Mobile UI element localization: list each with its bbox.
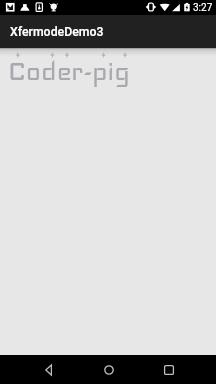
staticText: 3:27 xyxy=(193,2,213,14)
button[interactable]: Recents xyxy=(155,355,183,384)
staticText: Coder-pig xyxy=(8,54,131,88)
staticText: XfermodeDemo3 xyxy=(10,25,104,39)
button[interactable]: Home xyxy=(95,355,123,384)
button[interactable]: Back xyxy=(35,355,63,384)
